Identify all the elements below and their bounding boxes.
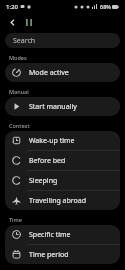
staticText: Search <box>13 36 36 46</box>
button[interactable]: Back <box>5 15 19 29</box>
button[interactable]: Wake-up time <box>5 131 120 150</box>
button[interactable]: Sleeping <box>5 171 120 190</box>
button[interactable]: Before bed <box>5 151 120 170</box>
staticText: Context <box>9 122 30 129</box>
staticText: 1:20 <box>6 3 18 11</box>
staticText: Sleeping <box>29 176 58 186</box>
staticText: Travelling abroad <box>29 196 87 206</box>
button[interactable]: Start manually <box>5 97 120 116</box>
button[interactable]: Specific time <box>5 225 120 244</box>
button[interactable]: Mode active <box>5 63 120 82</box>
staticText: Manual <box>9 88 29 95</box>
staticText: Mode active <box>29 68 69 78</box>
staticText: Specific time <box>29 230 71 240</box>
staticText: Wake-up time <box>29 136 75 146</box>
button[interactable]: Travelling abroad <box>5 191 120 210</box>
button[interactable]: Time period <box>5 245 120 264</box>
staticText: Time period <box>29 250 69 260</box>
staticText: Before bed <box>29 156 66 166</box>
button[interactable]: Search <box>5 33 120 48</box>
staticText: 68% <box>100 3 111 10</box>
staticText: Start manually <box>29 102 77 112</box>
staticText: Time <box>9 216 22 223</box>
button[interactable]: Pause modes <box>22 15 36 29</box>
staticText: Modes <box>9 54 27 61</box>
